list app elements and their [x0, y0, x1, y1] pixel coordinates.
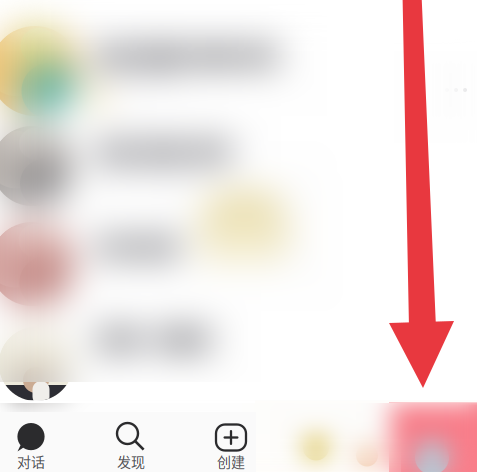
staticText: 创建: [217, 451, 245, 471]
button[interactable]: 创建: [181, 412, 281, 472]
staticText: 发现: [117, 451, 145, 471]
button[interactable]: 对话: [0, 412, 81, 472]
button[interactable]: 发现: [81, 412, 181, 472]
staticText: 对话: [17, 451, 45, 471]
